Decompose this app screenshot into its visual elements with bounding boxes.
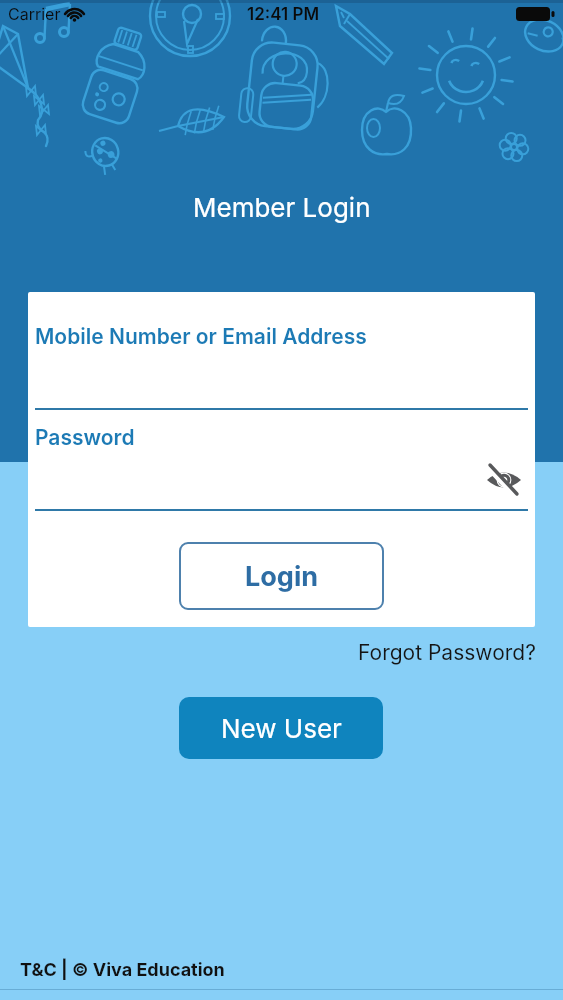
staticText: T&C | © Viva Education: [20, 959, 225, 981]
staticText: 12:41 PM: [247, 4, 320, 25]
button[interactable]: [484, 462, 524, 502]
button[interactable]: Password: [35, 419, 528, 511]
button[interactable]: Forgot Password?: [358, 640, 536, 665]
button[interactable]: Login: [179, 542, 384, 610]
staticText: Forgot Password?: [358, 640, 536, 665]
staticText: Password: [35, 425, 135, 450]
button[interactable]: Mobile Number or Email Address: [35, 318, 528, 410]
staticText: Member Login: [193, 192, 371, 223]
staticText: New User: [221, 713, 342, 744]
staticText: Mobile Number or Email Address: [35, 324, 367, 349]
staticText: Carrier: [8, 4, 61, 23]
staticText: Login: [245, 560, 319, 593]
button[interactable]: New User: [179, 697, 383, 759]
